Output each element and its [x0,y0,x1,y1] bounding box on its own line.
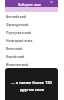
button[interactable]: Выберите язык [5,3,58,7]
button[interactable]: Итальянский [5,60,58,68]
button[interactable]: Немецкий язык [5,36,58,44]
staticText: … а также более 130 [11,80,52,85]
staticText: Португальский [6,30,32,34]
button[interactable]: Корейский [5,52,58,60]
staticText: других слов [20,87,44,92]
button[interactable]: Японский [5,44,58,52]
staticText: Японский [6,46,23,50]
button[interactable]: Португальский [5,28,58,36]
staticText: Выберите язык [18,3,41,7]
staticText: Французский [6,22,29,26]
button[interactable]: Английский [5,12,58,20]
staticText: Итальянский [6,62,28,66]
staticText: Корейский [6,54,25,58]
staticText: Немецкий язык [6,38,33,42]
staticText: Английский [6,14,26,18]
button[interactable]: Французский [5,20,58,28]
